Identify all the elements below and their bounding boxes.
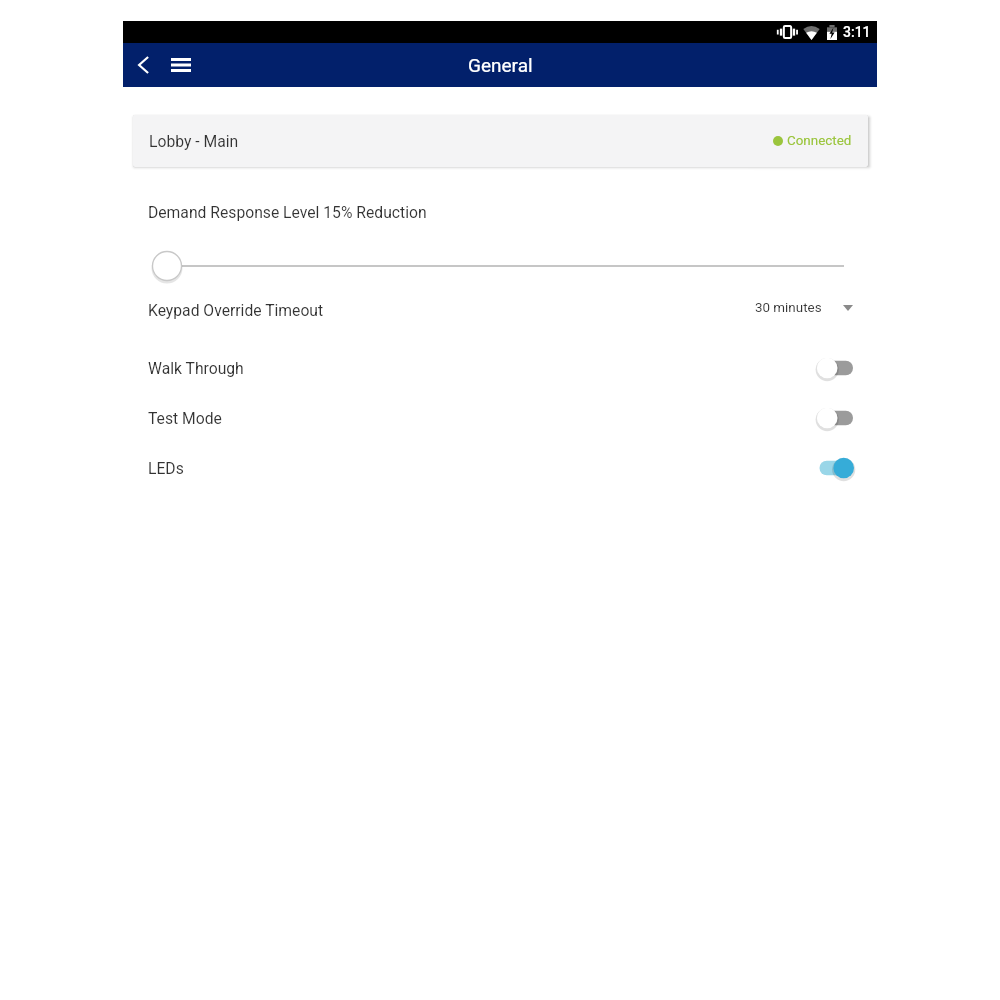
staticText: General bbox=[468, 54, 533, 76]
staticText: Test Mode bbox=[148, 409, 222, 427]
button[interactable]: Keypad Override Timeout bbox=[123, 288, 877, 332]
button[interactable]: Back bbox=[126, 48, 160, 82]
staticText: Lobby - Main bbox=[149, 132, 239, 150]
staticText: 30 minutes bbox=[755, 300, 822, 316]
button[interactable]: Test Mode bbox=[123, 397, 877, 439]
staticText: Connected bbox=[787, 133, 852, 149]
button[interactable]: LEDs bbox=[123, 447, 877, 489]
staticText: 3:11 bbox=[843, 24, 871, 40]
staticText: Demand Response Level 15% Reduction bbox=[148, 203, 427, 221]
staticText: Keypad Override Timeout bbox=[148, 301, 324, 319]
staticText: Walk Through bbox=[148, 359, 244, 377]
button[interactable]: Walk Through bbox=[123, 347, 877, 389]
button[interactable]: Menu bbox=[164, 48, 198, 82]
staticText: LEDs bbox=[148, 459, 184, 477]
button[interactable]: Demand response level slider bbox=[148, 242, 852, 290]
button[interactable]: Lobby - Main bbox=[133, 115, 868, 167]
